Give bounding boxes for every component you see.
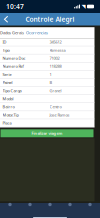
button[interactable]: Back <box>0 13 13 25</box>
button[interactable]: Finalizar viagem <box>0 129 93 137</box>
staticText: 71002 <box>49 55 59 61</box>
staticText: Serie <box>2 72 11 77</box>
staticText: Ocorrencias <box>26 30 48 35</box>
staticText: 10:47 <box>6 2 24 11</box>
staticText: 118288 <box>49 64 61 69</box>
staticText: Dados Gerais <box>0 30 24 35</box>
staticText: Modal <box>2 96 13 101</box>
staticText: ◥ <box>81 3 85 10</box>
staticText: Centro <box>49 104 61 109</box>
staticText: Tipo Carga <box>2 88 21 93</box>
staticText: Finalizar viagem <box>31 131 62 136</box>
staticText: Painel <box>2 80 12 85</box>
staticText: Bairro <box>2 104 14 109</box>
button[interactable]: Dados Gerais <box>0 29 24 36</box>
button[interactable]: Tab <box>80 200 100 209</box>
staticText: Tipo <box>2 47 9 53</box>
staticText: B <box>49 80 52 85</box>
staticText: Granel <box>49 88 61 93</box>
button[interactable]: Ocorrencias <box>24 29 49 36</box>
staticText: Numero Ref <box>2 64 23 69</box>
staticText: 1 <box>49 72 51 77</box>
staticText: Motor.Tip <box>2 112 18 117</box>
button[interactable]: Tab <box>0 200 20 209</box>
button[interactable]: Tab <box>20 200 40 209</box>
staticText: 345612 <box>49 39 61 45</box>
staticText: Jose Ramos <box>49 112 69 117</box>
button[interactable]: Tab <box>40 200 60 209</box>
staticText: Controle Alegri <box>25 15 74 24</box>
staticText: ID <box>2 39 6 45</box>
staticText: Placa <box>2 120 11 126</box>
staticText: Remessa <box>49 47 65 53</box>
button[interactable]: Tab <box>60 200 80 209</box>
staticText: Numero Doc <box>2 55 25 61</box>
